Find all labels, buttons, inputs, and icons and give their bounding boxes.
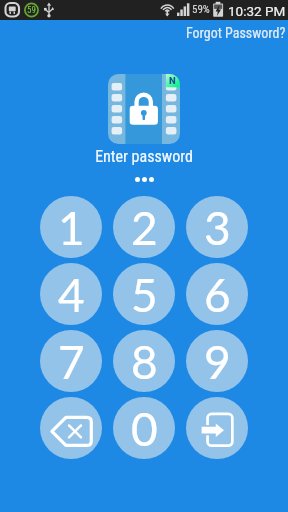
staticText: 4 — [58, 267, 85, 322]
staticText: 5 — [131, 267, 158, 322]
staticText: 59 — [27, 5, 36, 16]
staticText: 7 — [58, 334, 85, 389]
staticText: Enter password — [0, 147, 288, 166]
button[interactable]: Backspace — [40, 397, 102, 459]
button[interactable]: 5 — [113, 263, 175, 325]
button[interactable]: Forgot Password? — [182, 22, 288, 44]
button[interactable]: 2 — [113, 196, 175, 258]
staticText: 6 — [204, 267, 231, 322]
staticText: Forgot Password? — [186, 25, 286, 41]
staticText: 1 — [58, 200, 85, 255]
button[interactable]: 0 — [113, 397, 175, 459]
staticText: 59% — [192, 3, 210, 16]
button[interactable]: 4 — [40, 263, 102, 325]
staticText: 10:32 PM — [228, 3, 286, 19]
button[interactable]: 1 — [40, 196, 102, 258]
staticText: 0 — [131, 401, 158, 456]
button[interactable]: 3 — [186, 196, 248, 258]
staticText: 8 — [131, 334, 158, 389]
staticText: 2 — [131, 200, 158, 255]
button[interactable]: 7 — [40, 330, 102, 392]
staticText: 9 — [204, 334, 231, 389]
button[interactable]: Enter — [186, 397, 248, 459]
button[interactable]: 6 — [186, 263, 248, 325]
button[interactable]: 9 — [186, 330, 248, 392]
button[interactable]: 8 — [113, 330, 175, 392]
staticText: N — [169, 75, 176, 86]
staticText: 3 — [204, 200, 231, 255]
